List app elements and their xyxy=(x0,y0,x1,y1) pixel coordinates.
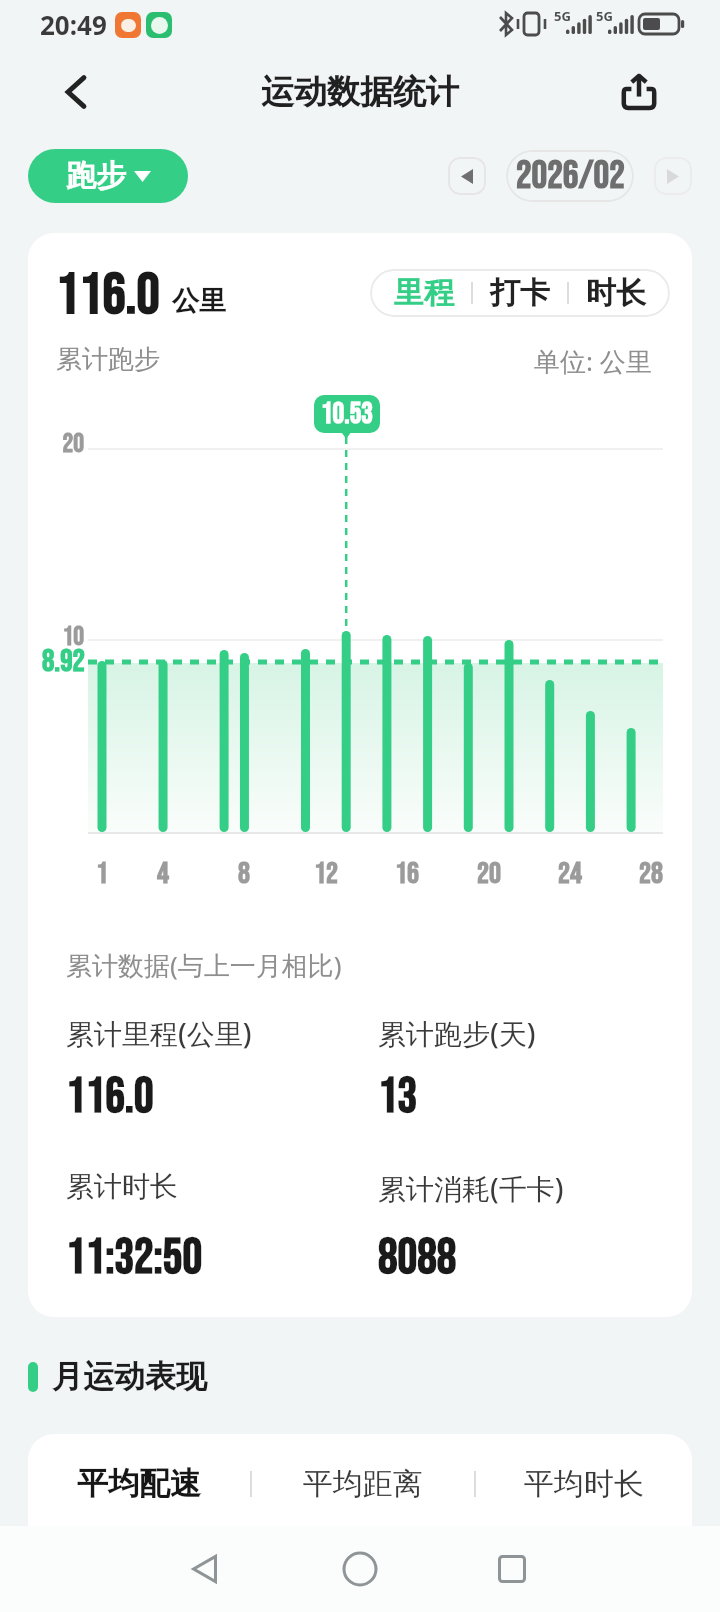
staticText: 单位: 公里 xyxy=(534,343,652,379)
staticText: 8 xyxy=(238,856,250,892)
staticText: 平均时长 xyxy=(524,1465,644,1503)
button[interactable]: 里程 xyxy=(370,269,471,317)
staticText: 累计跑步 xyxy=(56,343,160,376)
staticText: 累计里程(公里) xyxy=(66,1014,252,1052)
staticText: 里程 xyxy=(394,274,454,312)
button[interactable] xyxy=(654,157,692,195)
staticText: 116.0 xyxy=(66,1068,154,1127)
staticText: 12 xyxy=(314,856,338,892)
staticText: 4 xyxy=(157,856,169,892)
staticText: 累计跑步(天) xyxy=(378,1014,536,1052)
staticText: 11:32:50 xyxy=(66,1229,203,1288)
staticText: 平均配速 xyxy=(77,1464,201,1503)
staticText: 28 xyxy=(639,856,663,892)
staticText: 累计时长 xyxy=(66,1169,178,1204)
button[interactable] xyxy=(190,1554,220,1584)
staticText: 月运动表现 xyxy=(52,1357,207,1396)
button[interactable]: 2026/02 xyxy=(506,150,634,202)
button[interactable]: 跑步 xyxy=(28,149,188,203)
staticText: 累计消耗(千卡) xyxy=(378,1169,564,1207)
staticText: 平均距离 xyxy=(303,1465,423,1503)
staticText: 5G xyxy=(554,7,571,25)
staticText: 20:49 xyxy=(40,7,107,42)
staticText: 打卡 xyxy=(490,274,550,312)
button[interactable]: 平均配速 xyxy=(28,1464,250,1503)
staticText: 1 xyxy=(96,856,108,892)
staticText: 累计数据(与上一月相比) xyxy=(66,947,342,983)
staticText: 20 xyxy=(477,856,501,892)
button[interactable] xyxy=(498,1555,526,1583)
staticText: 时长 xyxy=(586,274,646,312)
button[interactable]: 时长 xyxy=(569,269,670,317)
button[interactable]: 平均距离 xyxy=(252,1465,474,1503)
button[interactable] xyxy=(342,1551,378,1587)
staticText: 10.53 xyxy=(321,397,373,432)
staticText: 8.92 xyxy=(41,643,85,680)
staticText: 10 xyxy=(62,621,84,653)
staticText: 24 xyxy=(558,856,582,892)
button[interactable] xyxy=(448,157,486,195)
staticText: 116.0 xyxy=(56,261,160,325)
staticText: 20 xyxy=(62,428,84,460)
staticText: 2026/02 xyxy=(516,153,625,200)
staticText: 8088 xyxy=(378,1229,457,1288)
button[interactable]: 打卡 xyxy=(473,269,567,317)
staticText: 13 xyxy=(378,1068,418,1127)
button[interactable] xyxy=(58,74,94,110)
staticText: 跑步 xyxy=(66,157,126,195)
staticText: 16 xyxy=(395,856,419,892)
staticText: 公里 xyxy=(172,284,226,318)
staticText: 5G xyxy=(596,7,613,25)
button[interactable]: 平均时长 xyxy=(476,1465,692,1503)
staticText: 运动数据统计 xyxy=(261,71,459,113)
button[interactable] xyxy=(620,73,658,111)
